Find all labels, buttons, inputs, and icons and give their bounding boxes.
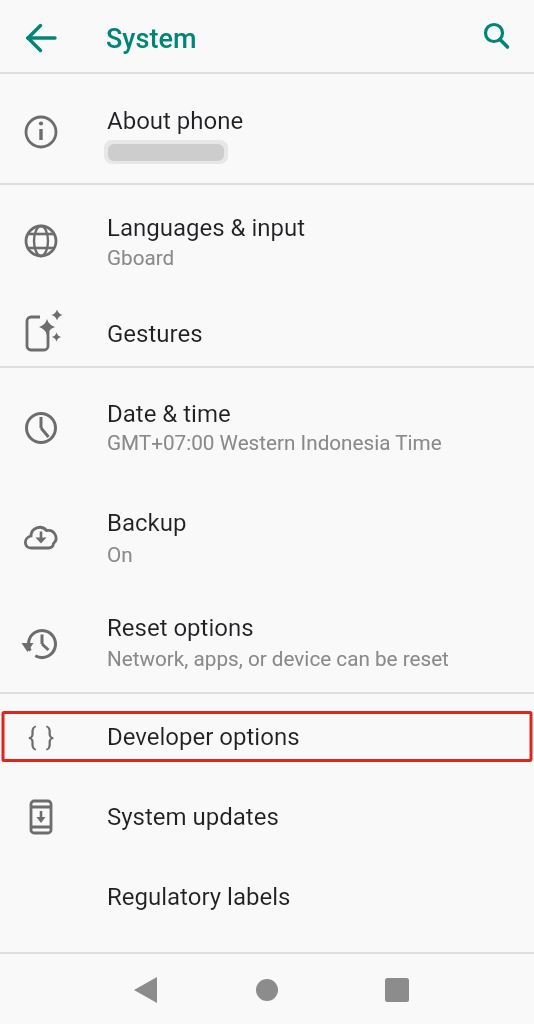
staticText: On (107, 543, 133, 567)
staticText: GMT+07:00 Western Indonesia Time (107, 431, 442, 455)
staticText: Gestures (107, 320, 203, 348)
staticText: Backup (107, 509, 187, 537)
button[interactable] (472, 10, 524, 62)
button[interactable] (0, 292, 534, 366)
button[interactable] (0, 857, 534, 937)
staticText: Regulatory labels (107, 883, 291, 911)
button[interactable] (0, 777, 534, 857)
button[interactable] (241, 964, 293, 1016)
button[interactable] (0, 694, 534, 777)
staticText: Languages & input (107, 214, 306, 242)
button[interactable] (20, 14, 68, 62)
staticText: { } (28, 723, 56, 752)
button[interactable] (0, 74, 534, 183)
staticText: Network, apps, or device can be reset (107, 647, 449, 671)
staticText: System updates (107, 803, 279, 831)
staticText: About phone (107, 107, 244, 135)
button[interactable] (371, 964, 423, 1016)
button[interactable] (120, 964, 172, 1016)
staticText: System (106, 23, 197, 55)
button[interactable] (0, 185, 534, 292)
button[interactable] (0, 586, 534, 692)
staticText: Developer options (107, 723, 300, 751)
staticText: Gboard (107, 246, 175, 270)
button[interactable] (0, 368, 534, 477)
staticText: Reset options (107, 614, 254, 642)
button[interactable] (0, 477, 534, 586)
staticText: Date & time (107, 400, 231, 428)
